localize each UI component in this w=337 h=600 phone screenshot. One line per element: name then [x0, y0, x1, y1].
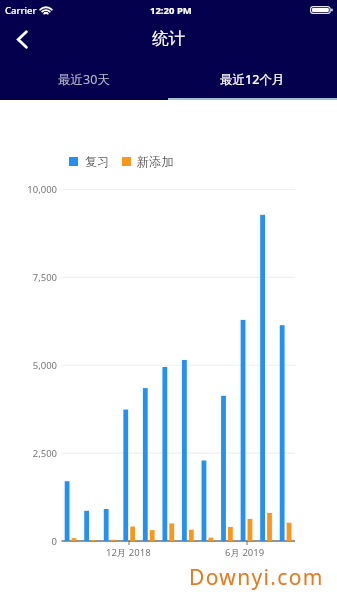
- staticText: 新添加: [137, 154, 174, 169]
- staticText: Carrier: [5, 4, 37, 17]
- staticText: 7,500: [0, 271, 57, 284]
- staticText: 6月 2019: [225, 546, 265, 559]
- staticText: 复习: [85, 154, 110, 169]
- staticText: 最近30天: [58, 71, 110, 88]
- staticText: 10,000: [0, 183, 57, 196]
- button[interactable]: 最近30天: [0, 57, 168, 100]
- button[interactable]: Back: [0, 20, 44, 57]
- staticText: 12月 2018: [106, 546, 151, 559]
- staticText: 2,500: [0, 447, 57, 460]
- button[interactable]: 最近12个月: [168, 57, 337, 100]
- staticText: Downyi.com: [189, 563, 324, 592]
- staticText: 统计: [152, 28, 185, 49]
- staticText: 5,000: [0, 359, 57, 372]
- staticText: 最近12个月: [220, 71, 285, 88]
- staticText: 0: [0, 535, 57, 548]
- staticText: 12:20 PM: [150, 4, 192, 17]
